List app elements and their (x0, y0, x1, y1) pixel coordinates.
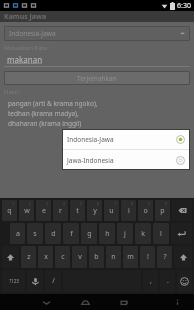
button[interactable]: e (36, 200, 51, 221)
button[interactable]: g (81, 223, 97, 244)
staticText: h (105, 229, 110, 239)
staticText: 3 (46, 201, 49, 206)
button[interactable]: d (45, 223, 61, 244)
staticText: tedhan (krama madya), (8, 109, 79, 118)
staticText: b (94, 252, 99, 262)
staticText: g (87, 229, 92, 239)
staticText: Jawa-Indonesia (67, 156, 176, 165)
button[interactable]: i (121, 200, 136, 221)
staticText: r (59, 206, 62, 216)
button[interactable]: x (38, 246, 53, 268)
staticText: ! (147, 252, 149, 262)
staticText: Indonesia-Jawa (67, 135, 176, 144)
staticText: . (167, 276, 169, 286)
button[interactable]: c (55, 246, 70, 268)
staticText: d (51, 229, 56, 239)
button[interactable]: Menu (168, 294, 187, 310)
button[interactable]: h (99, 223, 115, 244)
staticText: 0 (165, 201, 168, 206)
staticText: 2 (29, 201, 32, 206)
staticText: Masukkan Kata : (4, 44, 51, 52)
button[interactable]: , (143, 270, 158, 292)
button[interactable]: Key (172, 200, 192, 221)
staticText: s (33, 229, 37, 239)
staticText: pangan (arti & krama ngoko), (8, 99, 98, 108)
button[interactable]: Jawa-Indonesia (62, 150, 190, 170)
staticText: f (70, 229, 73, 239)
staticText: makanan (7, 54, 43, 65)
staticText: c (61, 252, 65, 262)
staticText: 6:30 (177, 1, 191, 11)
button[interactable]: Recent apps (112, 294, 136, 310)
button[interactable]: ?123 (2, 270, 25, 292)
button[interactable]: r (53, 200, 68, 221)
button[interactable]: / (45, 270, 61, 292)
staticText: i (128, 206, 130, 216)
staticText: dhaharan (krama inggil) (8, 119, 82, 128)
button[interactable]: makanan (4, 54, 190, 67)
button[interactable]: ? (157, 246, 172, 268)
button[interactable]: Back (34, 294, 58, 310)
staticText: ?123 (9, 278, 19, 284)
button[interactable]: l (153, 223, 169, 244)
staticText: 7 (114, 201, 117, 206)
button[interactable]: q (2, 200, 17, 221)
button[interactable]: . (160, 270, 175, 292)
button[interactable]: k (135, 223, 151, 244)
button[interactable]: y (87, 200, 102, 221)
staticText: Hasil : (4, 88, 21, 96)
staticText: ? (163, 252, 167, 262)
button[interactable]: Terjemahkan (4, 71, 190, 85)
button[interactable]: ! (140, 246, 155, 268)
button[interactable]: a (10, 223, 25, 244)
button[interactable]: b (89, 246, 104, 268)
staticText: j (124, 229, 126, 239)
button[interactable]: w (19, 200, 34, 221)
staticText: z (27, 252, 31, 262)
button[interactable]: n (106, 246, 121, 268)
button[interactable]: Indonesia-Jawa (62, 129, 190, 149)
staticText: / (52, 276, 55, 286)
button[interactable]: Keluar (165, 133, 190, 147)
staticText: 9 (148, 201, 151, 206)
staticText: a (16, 229, 20, 239)
button[interactable]: f (63, 223, 79, 244)
staticText: x (44, 252, 48, 262)
staticText: Kamus Jawa (4, 12, 47, 22)
button[interactable]: v (72, 246, 87, 268)
staticText: Terjemahkan (77, 74, 117, 83)
staticText: u (109, 206, 114, 216)
button[interactable]: Indonesia-Jawa (4, 26, 190, 41)
staticText: 8 (131, 201, 134, 206)
staticText: 6 (97, 201, 100, 206)
staticText: n (111, 252, 116, 262)
button[interactable]: z (21, 246, 36, 268)
staticText: , (150, 276, 152, 286)
button[interactable]: u (104, 200, 119, 221)
staticText: w (24, 206, 30, 216)
staticText: q (7, 206, 12, 216)
staticText: Keluar (169, 137, 186, 144)
staticText: 1 (12, 201, 15, 206)
button[interactable]: p (155, 200, 170, 221)
button[interactable]: Key (177, 270, 192, 292)
staticText: 5 (80, 201, 83, 206)
button[interactable]: t (70, 200, 85, 221)
staticText: e (42, 206, 46, 216)
button[interactable]: j (117, 223, 133, 244)
staticText: 4 (63, 201, 66, 206)
staticText: t (76, 206, 79, 216)
button[interactable]: Key (2, 246, 19, 268)
button[interactable]: o (138, 200, 153, 221)
staticText: m (127, 252, 134, 262)
button[interactable]: Key (27, 270, 43, 292)
staticText: k (141, 229, 145, 239)
staticText: p (160, 206, 165, 216)
button[interactable]: Key (171, 223, 192, 244)
staticText: o (143, 206, 148, 216)
button[interactable]: m (123, 246, 138, 268)
button[interactable]: Home (73, 294, 97, 310)
button[interactable]: Key (174, 246, 192, 268)
button[interactable]: s (27, 223, 43, 244)
